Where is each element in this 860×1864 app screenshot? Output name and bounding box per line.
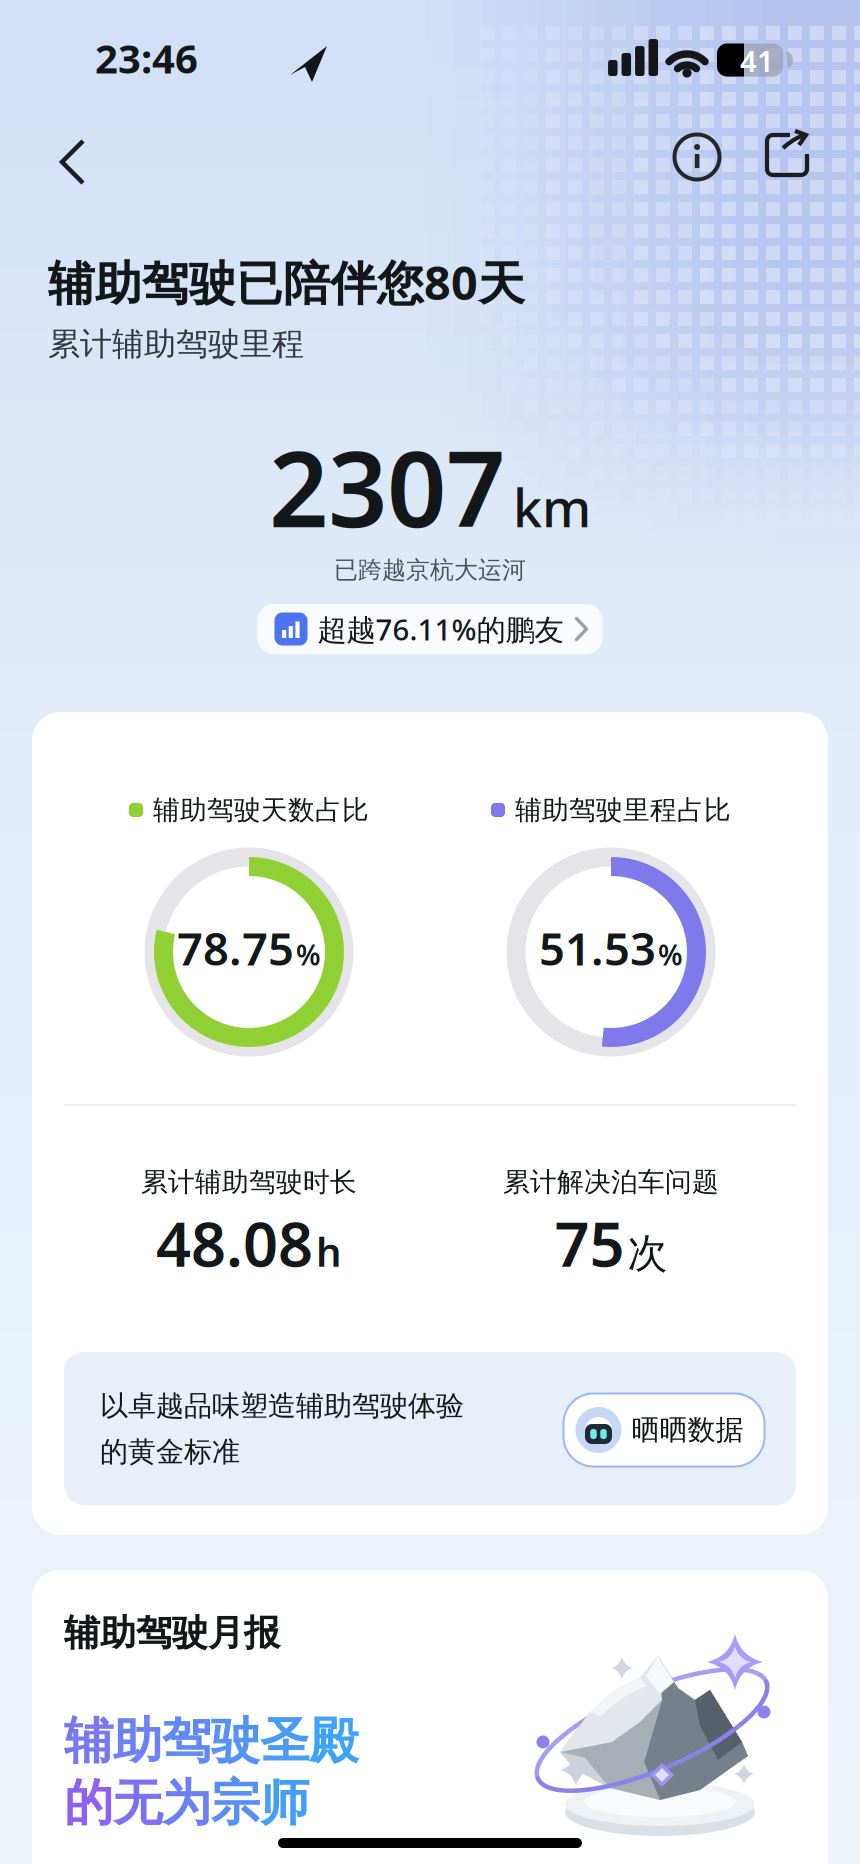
staticText: 超越76.11%的鹏友 <box>317 609 563 648</box>
staticText: 2307 <box>269 418 505 556</box>
staticText: km <box>513 473 591 542</box>
staticText: 的黄金标准 <box>100 1435 240 1469</box>
staticText: 殿 <box>309 1711 358 1771</box>
button[interactable]: Info <box>667 127 727 187</box>
staticText: 51.53 <box>539 918 656 978</box>
staticText: 已跨越京杭大运河 <box>334 555 526 585</box>
staticText: 无 <box>113 1773 162 1833</box>
button[interactable]: 晒晒数据 <box>562 1393 765 1466</box>
staticText: 41 <box>740 41 774 80</box>
staticText: 晒晒数据 <box>631 1413 743 1447</box>
staticText: 宗 <box>211 1773 260 1833</box>
staticText: 累计解决泊车问题 <box>503 1166 719 1198</box>
staticText: 23:46 <box>95 31 198 84</box>
staticText: % <box>658 936 683 973</box>
staticText: 为 <box>162 1773 211 1833</box>
staticText: 累计辅助驾驶里程 <box>48 324 304 364</box>
button[interactable]: 超越76.11%的鹏友 <box>257 604 602 654</box>
staticText: % <box>296 936 321 973</box>
staticText: 驶 <box>211 1711 260 1771</box>
staticText: 辅助驾驶月报 <box>64 1611 280 1655</box>
staticText: 辅助驾驶已陪伴您80天 <box>48 251 525 313</box>
staticText: h <box>316 1225 342 1278</box>
staticText: 辅 <box>64 1711 113 1771</box>
staticText: 助 <box>113 1711 162 1771</box>
button[interactable]: Monthly report <box>32 1570 828 1864</box>
staticText: 累计辅助驾驶时长 <box>141 1166 357 1198</box>
staticText: 师 <box>260 1773 309 1833</box>
staticText: 驾 <box>162 1711 211 1771</box>
button[interactable]: Back <box>42 132 102 192</box>
staticText: 以卓越品味塑造辅助驾驶体验 <box>100 1389 464 1423</box>
staticText: 78.75 <box>177 918 294 978</box>
staticText: 辅助驾驶里程占比 <box>515 794 731 826</box>
button[interactable]: Share <box>757 126 817 186</box>
staticText: 75 <box>554 1202 624 1284</box>
staticText: 次 <box>627 1229 667 1278</box>
staticText: 48.08 <box>156 1202 313 1284</box>
staticText: 辅助驾驶天数占比 <box>153 794 369 826</box>
staticText: 圣 <box>260 1711 309 1771</box>
staticText: 的 <box>64 1773 113 1833</box>
